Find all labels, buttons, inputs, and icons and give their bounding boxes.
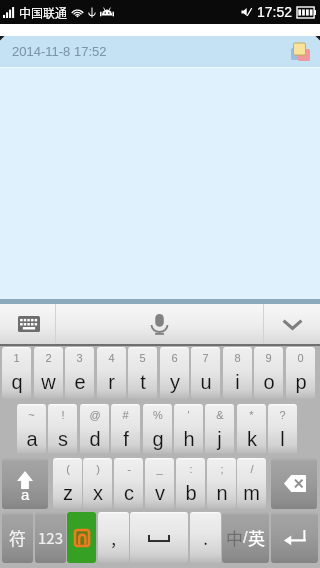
button[interactable]: / xyxy=(237,458,266,509)
button[interactable]: ( xyxy=(53,458,82,509)
staticText: r xyxy=(108,371,115,393)
button[interactable]: 4 xyxy=(97,347,126,399)
staticText: j xyxy=(217,428,222,450)
button[interactable]: Backspace xyxy=(271,458,317,509)
staticText: n xyxy=(216,482,228,504)
staticText: x xyxy=(93,482,103,504)
button[interactable]: Shift xyxy=(2,458,48,509)
button[interactable]: ~ xyxy=(17,404,46,454)
staticText: , xyxy=(111,525,116,550)
button[interactable]: 1 xyxy=(2,347,31,399)
button[interactable]: @ xyxy=(80,404,109,454)
button[interactable]: 3 xyxy=(65,347,94,399)
button[interactable]: 0 xyxy=(286,347,315,399)
button[interactable]: ; xyxy=(207,458,236,509)
staticText: k xyxy=(247,428,257,450)
staticText: c xyxy=(124,482,134,504)
staticText: 9 xyxy=(265,352,272,364)
button[interactable]: : xyxy=(176,458,205,509)
staticText: w xyxy=(41,371,56,393)
button[interactable]: Notes xyxy=(291,43,310,61)
staticText: y xyxy=(170,371,180,393)
staticText: t xyxy=(140,371,146,393)
staticText: s xyxy=(58,428,68,450)
staticText: h xyxy=(183,428,195,450)
staticText: 中 xyxy=(226,525,243,550)
staticText: ' xyxy=(187,409,190,421)
staticText: a xyxy=(21,486,30,503)
staticText: 中国联通 xyxy=(19,4,68,21)
staticText: ~ xyxy=(28,409,35,421)
staticText: 1 xyxy=(13,352,20,364)
button[interactable]: 9 xyxy=(254,347,283,399)
staticText: @ xyxy=(89,409,101,421)
staticText: 17:52 xyxy=(257,4,293,20)
button[interactable]: 2 xyxy=(34,347,63,399)
staticText: i xyxy=(235,371,240,393)
button[interactable]: Space xyxy=(130,512,188,563)
button[interactable]: # xyxy=(111,404,140,454)
staticText: ! xyxy=(61,409,65,421)
staticText: ; xyxy=(220,463,224,475)
button[interactable]: 8 xyxy=(223,347,252,399)
staticText: b xyxy=(185,482,197,504)
staticText: l xyxy=(280,428,285,450)
button[interactable]: 7 xyxy=(191,347,220,399)
staticText: o xyxy=(263,371,275,393)
staticText: q xyxy=(11,371,23,393)
staticText: / xyxy=(243,528,248,547)
button[interactable]: * xyxy=(237,404,266,454)
button[interactable]: Input method xyxy=(67,512,96,563)
staticText: p xyxy=(295,371,307,393)
button[interactable]: ) xyxy=(83,458,112,509)
button[interactable]: Hide keyboard xyxy=(264,304,320,344)
button[interactable]: ? xyxy=(268,404,297,454)
staticText: 5 xyxy=(139,352,146,364)
staticText: 6 xyxy=(171,352,178,364)
button[interactable]: _ xyxy=(145,458,174,509)
staticText: ( xyxy=(66,463,70,475)
button[interactable]: Enter xyxy=(271,512,318,563)
button[interactable]: Keyboard xyxy=(0,304,55,344)
button[interactable]: 6 xyxy=(160,347,189,399)
staticText: 2014-11-8 17:52 xyxy=(12,44,107,59)
button[interactable]: 5 xyxy=(128,347,157,399)
staticText: _ xyxy=(156,463,163,475)
button[interactable]: ' xyxy=(174,404,203,454)
button[interactable]: 123 xyxy=(35,512,66,563)
staticText: % xyxy=(153,409,163,421)
staticText: 英 xyxy=(248,525,265,550)
staticText: ? xyxy=(279,409,286,421)
staticText: / xyxy=(250,463,254,475)
staticText: . xyxy=(203,525,208,550)
button[interactable]: 符 xyxy=(2,512,33,563)
button[interactable]: ! xyxy=(48,404,77,454)
staticText: a xyxy=(26,428,38,450)
staticText: 123 xyxy=(38,527,63,549)
staticText: g xyxy=(152,428,164,450)
button[interactable]: - xyxy=(114,458,143,509)
button[interactable]: , xyxy=(98,512,129,563)
staticText: & xyxy=(216,409,224,421)
staticText: u xyxy=(200,371,212,393)
staticText: ) xyxy=(96,463,100,475)
staticText: 符 xyxy=(9,525,26,550)
button[interactable]: . xyxy=(190,512,221,563)
button[interactable]: & xyxy=(205,404,234,454)
staticText: e xyxy=(74,371,86,393)
button[interactable]: 中 xyxy=(222,512,269,563)
staticText: - xyxy=(127,463,131,475)
staticText: f xyxy=(123,428,129,450)
button[interactable]: Voice input xyxy=(56,304,263,344)
staticText: 7 xyxy=(202,352,209,364)
staticText: 3 xyxy=(76,352,83,364)
staticText: m xyxy=(243,482,260,504)
staticText: v xyxy=(155,482,165,504)
staticText: z xyxy=(63,482,73,504)
staticText: 8 xyxy=(234,352,241,364)
staticText: d xyxy=(89,428,101,450)
staticText: 0 xyxy=(297,352,304,364)
staticText: * xyxy=(249,409,254,421)
button[interactable]: % xyxy=(143,404,172,454)
staticText: 2 xyxy=(45,352,52,364)
